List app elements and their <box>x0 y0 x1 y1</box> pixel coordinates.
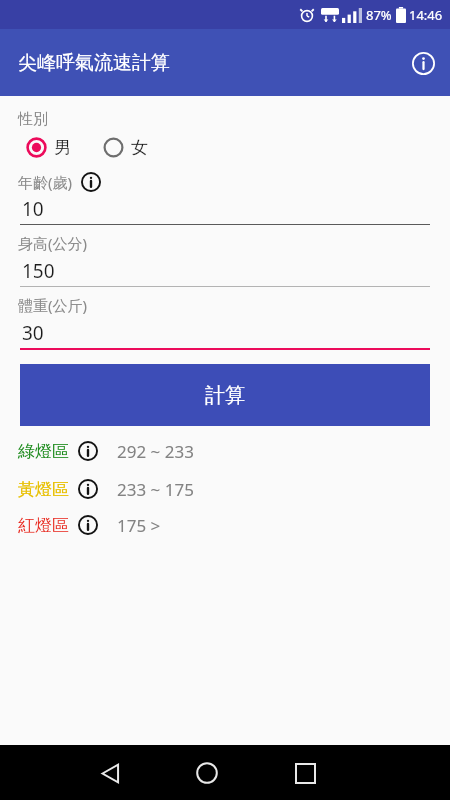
button[interactable]: Home <box>183 749 231 797</box>
staticText: 綠燈區 <box>18 441 69 462</box>
staticText: 性別 <box>18 110 48 129</box>
staticText: 30 <box>22 320 44 346</box>
staticText: 175 > <box>117 514 161 537</box>
staticText: 10 <box>22 196 44 222</box>
button[interactable]: 男 <box>26 137 71 158</box>
button[interactable]: 尖峰呼氣流速計算 <box>0 29 450 96</box>
button[interactable]: Information <box>406 46 440 80</box>
staticText: 女 <box>131 137 148 158</box>
other: 黃燈區 information <box>76 477 100 501</box>
staticText: 233 ~ 175 <box>117 478 194 501</box>
button[interactable]: 10 <box>20 194 430 224</box>
staticText: 紅燈區 <box>18 515 69 536</box>
button[interactable]: Age information <box>79 170 103 194</box>
button[interactable]: 150 <box>20 256 430 286</box>
staticText: 尖峰呼氣流速計算 <box>18 51 170 75</box>
staticText: 體重(公斤) <box>18 295 88 315</box>
staticText: 87% <box>366 6 392 24</box>
staticText: 身高(公分) <box>18 233 88 253</box>
staticText: 黃燈區 <box>18 479 69 500</box>
staticText: 14:46 <box>409 6 443 24</box>
staticText: 150 <box>22 258 55 284</box>
button[interactable]: Back <box>86 749 134 797</box>
staticText: 計算 <box>205 383 245 408</box>
button[interactable]: 計算 <box>20 364 430 426</box>
button[interactable]: Recent apps <box>281 749 329 797</box>
other: 紅燈區 information <box>76 513 100 537</box>
staticText: 男 <box>54 137 71 158</box>
staticText: 292 ~ 233 <box>117 440 194 463</box>
button[interactable]: 紅燈區 <box>18 513 450 537</box>
staticText: 年齡(歲) <box>18 172 73 192</box>
button[interactable]: 女 <box>103 137 148 158</box>
button[interactable]: 30 <box>20 318 430 348</box>
button[interactable]: 黃燈區 <box>18 477 450 501</box>
button[interactable]: 綠燈區 <box>18 439 450 463</box>
other: 綠燈區 information <box>76 439 100 463</box>
